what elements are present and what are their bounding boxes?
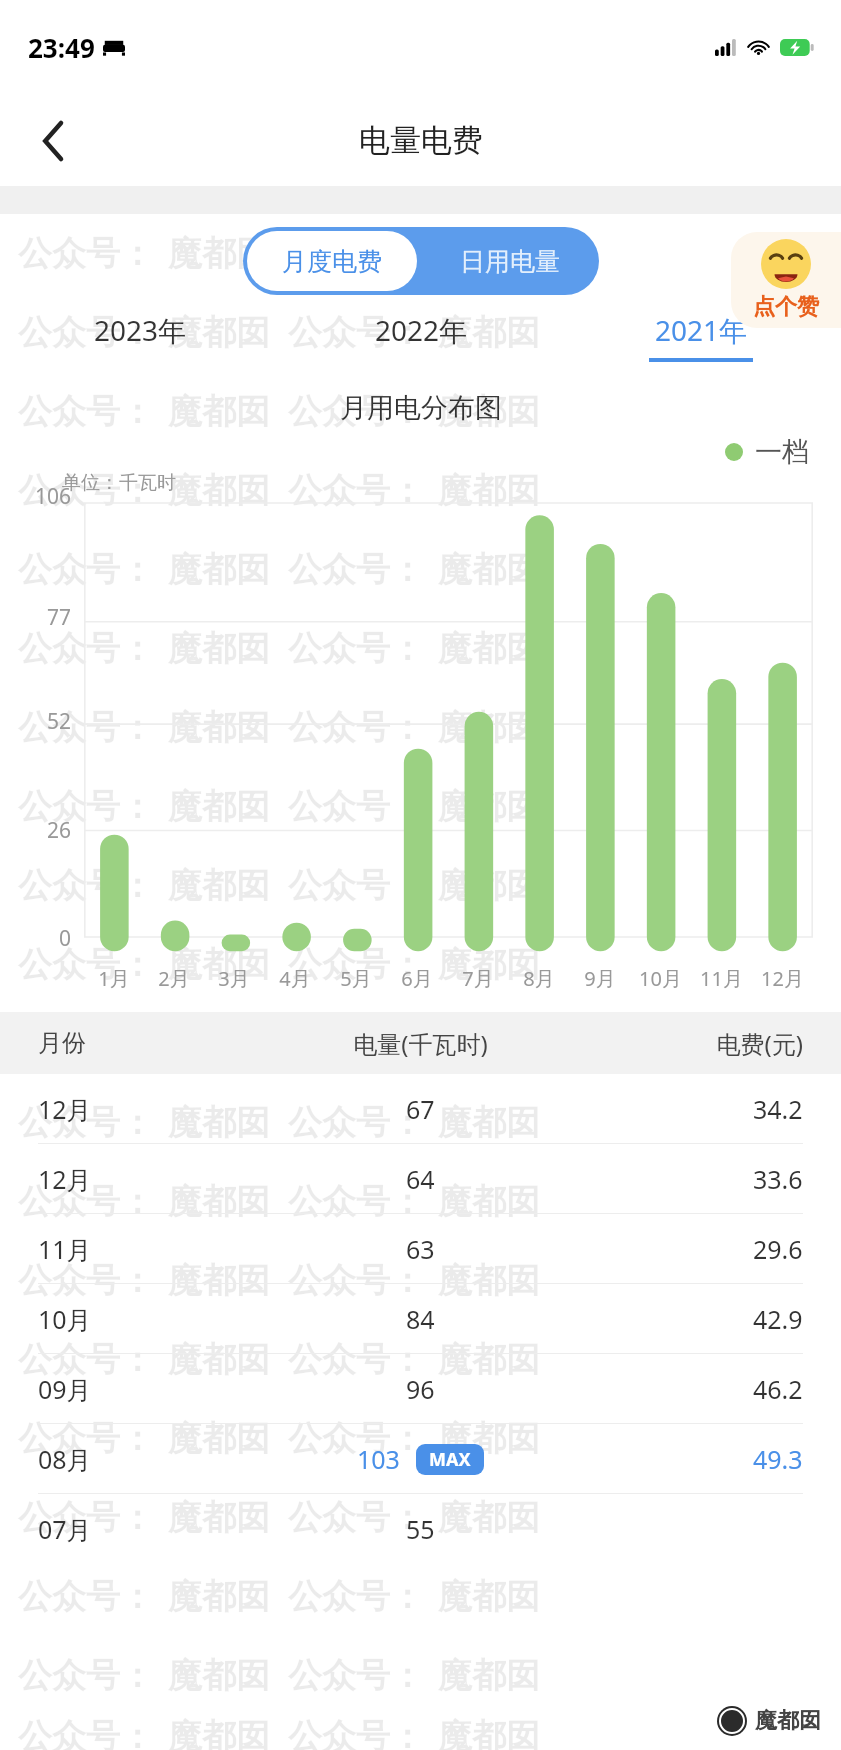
- staticText: 12月: [761, 965, 804, 992]
- staticText: 魔都囡: [168, 390, 270, 433]
- staticText: 电量电费: [359, 121, 483, 160]
- staticText: 魔都囡: [438, 1417, 540, 1460]
- button[interactable]: 09月: [0, 1354, 841, 1423]
- staticText: 2月: [158, 965, 190, 992]
- staticText: 34.2: [753, 1092, 803, 1126]
- button[interactable]: 11月: [0, 1214, 841, 1283]
- staticText: 魔都囡: [438, 1101, 540, 1144]
- staticText: 公众号：: [18, 1575, 154, 1618]
- staticText: 公众号：: [18, 1022, 154, 1065]
- staticText: 3月: [218, 965, 250, 992]
- staticText: 公众号：: [18, 548, 154, 591]
- staticText: 公众号：: [288, 864, 424, 907]
- staticText: 公众号：: [18, 943, 154, 986]
- staticText: 魔都囡: [438, 943, 540, 986]
- staticText: 日用电量: [460, 246, 560, 277]
- staticText: 5月: [340, 965, 372, 992]
- staticText: 魔都囡: [438, 1180, 540, 1223]
- staticText: 0: [59, 924, 72, 953]
- button[interactable]: 07月: [0, 1494, 841, 1563]
- staticText: 84: [406, 1302, 435, 1336]
- staticText: 魔都囡: [438, 627, 540, 670]
- staticText: 魔都囡: [168, 1259, 270, 1302]
- button[interactable]: Like: [731, 232, 841, 328]
- staticText: 魔都囡: [438, 548, 540, 591]
- staticText: 公众号：: [18, 1259, 154, 1302]
- staticText: 公众号：: [18, 864, 154, 907]
- button[interactable]: 2022年: [281, 311, 561, 373]
- staticText: 魔都囡: [168, 1715, 270, 1750]
- staticText: 魔都囡: [438, 864, 540, 907]
- staticText: 公众号：: [288, 390, 424, 433]
- staticText: 魔都囡: [438, 469, 540, 512]
- staticText: 77: [47, 603, 72, 632]
- staticText: 1月: [98, 965, 130, 992]
- staticText: 33.6: [753, 1162, 803, 1196]
- staticText: 公众号：: [288, 1259, 424, 1302]
- staticText: 公众号：: [18, 1338, 154, 1381]
- staticText: 9月: [584, 965, 616, 992]
- staticText: 魔都囡: [438, 1259, 540, 1302]
- staticText: 公众号：: [18, 232, 154, 275]
- button[interactable]: 12月: [0, 1074, 841, 1143]
- staticText: 46.2: [753, 1372, 803, 1406]
- staticText: 公众号：: [18, 1101, 154, 1144]
- staticText: 公众号：: [18, 1417, 154, 1460]
- button[interactable]: 日用电量: [421, 227, 599, 295]
- staticText: 67: [406, 1092, 435, 1126]
- staticText: 07月: [38, 1512, 285, 1546]
- staticText: 96: [406, 1372, 435, 1406]
- staticText: 魔都囡: [168, 1417, 270, 1460]
- staticText: 魔都囡: [168, 943, 270, 986]
- staticText: 公众号：: [288, 1654, 424, 1697]
- staticText: 公众号：: [18, 1496, 154, 1539]
- staticText: 公众号：: [288, 232, 424, 275]
- staticText: 08月: [38, 1442, 285, 1476]
- staticText: 26: [47, 816, 72, 845]
- button[interactable]: 2021年: [561, 311, 841, 373]
- staticText: 29.6: [753, 1232, 803, 1266]
- staticText: 魔都囡: [168, 1575, 270, 1618]
- staticText: 月度电费: [282, 246, 382, 277]
- staticText: 49.3: [753, 1442, 803, 1476]
- staticText: 魔都囡: [438, 311, 540, 354]
- staticText: 公众号：: [288, 706, 424, 749]
- staticText: 公众号：: [288, 469, 424, 512]
- staticText: 55: [406, 1512, 435, 1546]
- staticText: 公众号：: [288, 1180, 424, 1223]
- staticText: 公众号：: [288, 785, 424, 828]
- staticText: 公众号：: [18, 785, 154, 828]
- button[interactable]: 月度电费: [247, 231, 417, 291]
- staticText: 公众号：: [288, 943, 424, 986]
- staticText: 公众号：: [18, 390, 154, 433]
- staticText: 106: [35, 482, 72, 511]
- staticText: 公众号：: [288, 548, 424, 591]
- staticText: 公众号：: [288, 1715, 424, 1750]
- button[interactable]: 10月: [0, 1284, 841, 1353]
- button[interactable]: Back: [26, 113, 82, 169]
- staticText: 公众号：: [288, 1338, 424, 1381]
- staticText: 魔都囡: [168, 706, 270, 749]
- staticText: 公众号：: [288, 1022, 424, 1065]
- staticText: 公众号：: [18, 311, 154, 354]
- staticText: 12月: [38, 1162, 285, 1196]
- staticText: 103: [357, 1442, 400, 1476]
- staticText: 魔都囡: [168, 627, 270, 670]
- staticText: 4月: [279, 965, 311, 992]
- staticText: 魔都囡: [438, 232, 540, 275]
- staticText: 公众号：: [288, 627, 424, 670]
- staticText: 一档: [755, 435, 809, 469]
- staticText: 单位：千瓦时: [62, 471, 176, 495]
- staticText: 魔都囡: [438, 1022, 540, 1065]
- staticText: 公众号：: [18, 1654, 154, 1697]
- staticText: 2022年: [375, 311, 468, 349]
- staticText: 11月: [38, 1232, 285, 1266]
- staticText: 7月: [462, 965, 494, 992]
- button[interactable]: 2023年: [0, 311, 281, 373]
- staticText: 52: [47, 707, 72, 736]
- staticText: 42.9: [753, 1302, 803, 1336]
- button[interactable]: 08月: [0, 1424, 841, 1493]
- staticText: 魔都囡: [438, 390, 540, 433]
- staticText: 63: [406, 1232, 435, 1266]
- button[interactable]: 12月: [0, 1144, 841, 1213]
